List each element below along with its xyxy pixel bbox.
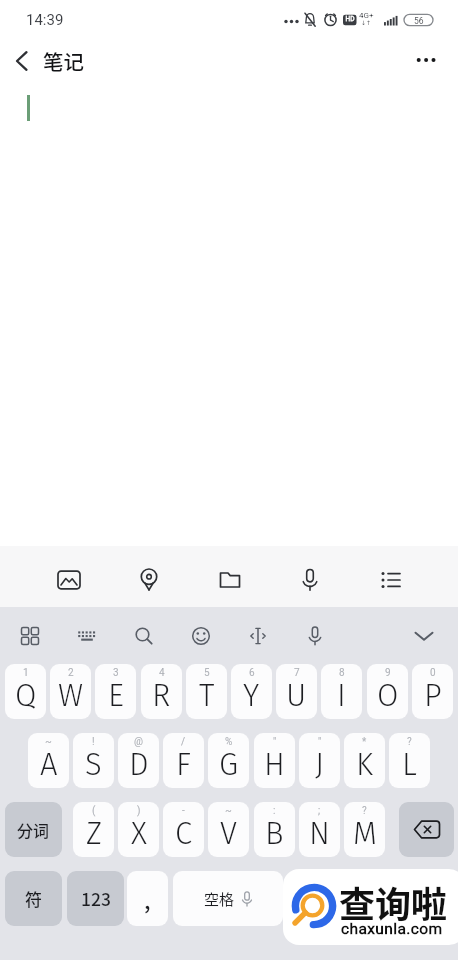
staticText: 1 <box>23 667 29 679</box>
staticText: ~ <box>225 805 232 817</box>
staticText: L <box>402 746 417 783</box>
button[interactable]: " <box>254 733 295 788</box>
button[interactable] <box>132 624 156 648</box>
staticText: M <box>353 815 377 852</box>
button[interactable] <box>216 566 244 594</box>
staticText: " <box>273 736 277 748</box>
staticText: 查询啦 <box>339 876 448 928</box>
staticText: " <box>318 736 322 748</box>
staticText: W <box>58 677 84 714</box>
button[interactable]: ~ <box>208 802 249 857</box>
staticText: 123 <box>81 886 111 911</box>
button[interactable]: : <box>254 802 295 857</box>
staticText: ↓↑ <box>361 19 372 26</box>
staticText: 8 <box>339 667 345 679</box>
button[interactable]: - <box>163 802 204 857</box>
staticText: C <box>175 815 193 852</box>
button[interactable] <box>18 624 42 648</box>
staticText: - <box>182 805 185 817</box>
staticText: : <box>273 805 276 817</box>
staticText: B <box>265 815 284 852</box>
staticText: H <box>264 746 285 783</box>
staticText: 9 <box>385 667 391 679</box>
staticText: 分词 <box>17 818 50 841</box>
staticText: P <box>424 677 442 714</box>
staticText: N <box>309 815 330 852</box>
staticText: 5 <box>204 667 210 679</box>
button[interactable] <box>75 624 99 648</box>
button[interactable]: ( <box>73 802 114 857</box>
staticText: I <box>337 677 346 714</box>
staticText: Y <box>243 677 260 714</box>
button[interactable]: ) <box>118 802 159 857</box>
button[interactable] <box>296 566 324 594</box>
staticText: ; <box>318 805 321 817</box>
staticText: A <box>40 746 58 783</box>
staticText: chaxunla.com <box>341 920 443 938</box>
staticText: E <box>108 677 124 714</box>
button[interactable]: ~ <box>28 733 69 788</box>
button[interactable]: 分词 <box>5 802 62 857</box>
button[interactable] <box>399 802 454 857</box>
staticText: 6 <box>249 667 255 679</box>
staticText: F <box>176 746 191 783</box>
button[interactable]: " <box>299 733 340 788</box>
button[interactable]: 123 <box>67 871 124 926</box>
button[interactable]: 7 <box>276 664 317 719</box>
button[interactable] <box>377 566 405 594</box>
staticText: 笔记 <box>43 46 84 76</box>
button[interactable] <box>135 566 163 594</box>
button[interactable]: 6 <box>231 664 272 719</box>
staticText: Z <box>86 815 102 852</box>
staticText: * <box>362 736 367 748</box>
staticText: J <box>315 746 325 783</box>
button[interactable] <box>246 624 270 648</box>
button[interactable] <box>411 623 437 649</box>
staticText: O <box>377 677 399 714</box>
button[interactable]: 2 <box>50 664 91 719</box>
button[interactable]: 4 <box>141 664 182 719</box>
button[interactable]: @ <box>118 733 159 788</box>
staticText: ? <box>407 736 412 748</box>
button[interactable]: , <box>127 871 168 926</box>
button[interactable] <box>189 624 213 648</box>
button[interactable]: 8 <box>321 664 362 719</box>
staticText: 14:39 <box>26 11 64 29</box>
button[interactable] <box>412 46 440 74</box>
button[interactable] <box>303 624 327 648</box>
button[interactable]: 空格 <box>173 871 283 926</box>
button[interactable] <box>10 49 34 73</box>
button[interactable]: 9 <box>367 664 408 719</box>
button[interactable]: 1 <box>5 664 46 719</box>
button[interactable]: 5 <box>186 664 227 719</box>
staticText: % <box>225 736 233 748</box>
button[interactable]: / <box>163 733 204 788</box>
staticText: S <box>85 746 102 783</box>
staticText: 0 <box>430 667 436 679</box>
staticText: , <box>144 883 151 915</box>
staticText: T <box>199 677 215 714</box>
button[interactable]: ; <box>299 802 340 857</box>
button[interactable]: 符 <box>5 871 62 926</box>
button[interactable]: 0 <box>412 664 453 719</box>
staticText: / <box>181 736 186 748</box>
button[interactable] <box>287 871 454 926</box>
staticText: ( <box>92 805 96 817</box>
staticText: 4 <box>159 667 165 679</box>
button[interactable]: ! <box>73 733 114 788</box>
staticText: ? <box>362 805 367 817</box>
button[interactable] <box>55 566 83 594</box>
staticText: K <box>356 746 373 783</box>
button[interactable]: % <box>208 733 249 788</box>
staticText: Q <box>15 677 37 714</box>
button[interactable]: * <box>344 733 385 788</box>
staticText: 56 <box>414 16 424 26</box>
staticText: HD <box>344 15 356 23</box>
staticText: X <box>131 815 147 852</box>
staticText: V <box>220 815 237 852</box>
staticText: ~ <box>45 736 52 748</box>
button[interactable]: ? <box>389 733 430 788</box>
staticText: 空格 <box>204 888 235 910</box>
button[interactable]: ? <box>344 802 385 857</box>
button[interactable]: 3 <box>95 664 136 719</box>
